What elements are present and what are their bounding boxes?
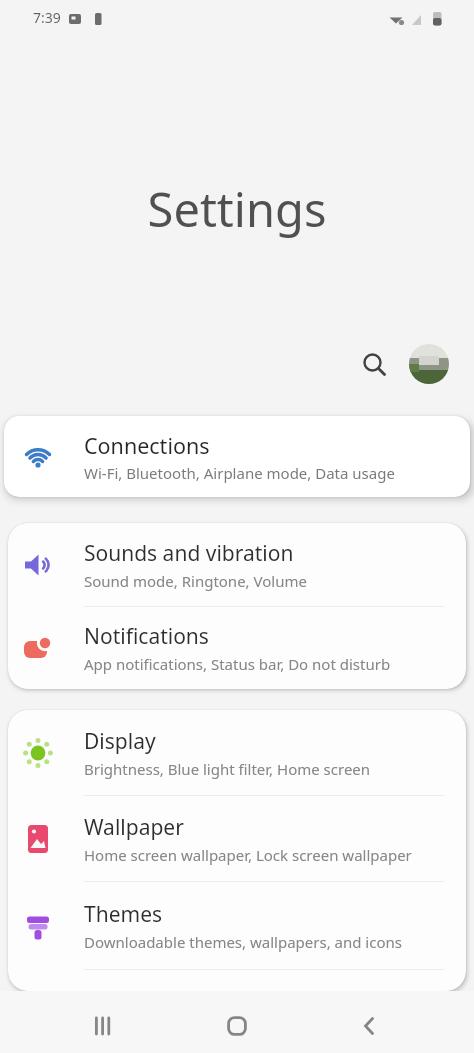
staticText: Sounds and vibration [84, 539, 294, 568]
button[interactable] [345, 1002, 393, 1050]
staticText: Wi-Fi, Bluetooth, Airplane mode, Data us… [84, 463, 395, 483]
staticText: Settings [0, 177, 474, 241]
button[interactable]: Wallpaper [8, 796, 466, 881]
button[interactable]: Themes [8, 882, 466, 969]
staticText: Display [84, 727, 156, 756]
staticText: 7:39 [33, 8, 61, 27]
staticText: Sound mode, Ringtone, Volume [84, 571, 307, 591]
staticText: Downloadable themes, wallpapers, and ico… [84, 932, 402, 952]
staticText: Home screen wallpaper, Lock screen wallp… [84, 845, 412, 865]
staticText: Brightness, Blue light filter, Home scre… [84, 759, 371, 779]
button[interactable] [358, 348, 392, 382]
button[interactable] [213, 1002, 261, 1050]
button[interactable]: Notifications [8, 607, 466, 689]
button[interactable]: Sounds and vibration [8, 523, 466, 606]
staticText: Notifications [84, 622, 209, 651]
button[interactable] [79, 1002, 127, 1050]
staticText: Wallpaper [84, 813, 184, 842]
button[interactable]: Display [8, 710, 466, 795]
button[interactable]: Connections [4, 416, 470, 497]
staticText: Themes [84, 900, 163, 929]
staticText: Connections [84, 431, 210, 460]
button[interactable] [409, 344, 449, 384]
staticText: App notifications, Status bar, Do not di… [84, 654, 391, 674]
